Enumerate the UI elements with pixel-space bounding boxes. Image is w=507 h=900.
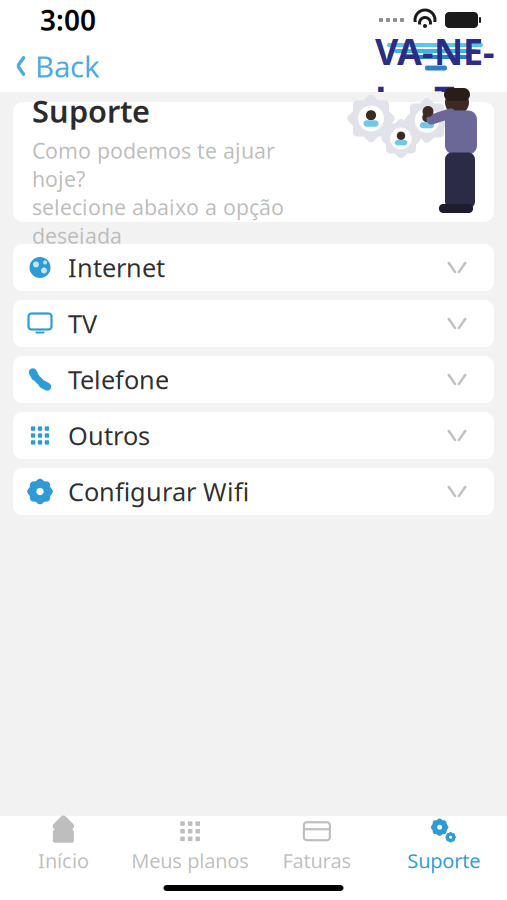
staticText: Suporte (407, 847, 480, 874)
staticText: Meus planos (131, 847, 249, 874)
staticText: 3:00 (40, 1, 96, 39)
button[interactable]: Telefone (13, 356, 494, 403)
button[interactable]: Início (0, 810, 127, 878)
button[interactable]: Internet (13, 244, 494, 291)
staticText: Faturas (282, 847, 351, 874)
button[interactable]: Back (0, 40, 100, 91)
button[interactable]: TV (13, 300, 494, 347)
button[interactable]: Configurar Wifi (13, 468, 494, 515)
button[interactable]: Meus planos (127, 810, 254, 878)
staticText: Configurar Wifi (68, 475, 249, 508)
staticText: VAL (375, 27, 434, 123)
button[interactable]: Outros (13, 412, 494, 459)
button[interactable]: Faturas (253, 810, 380, 878)
staticText: Internet (68, 251, 165, 284)
staticText: Início (38, 847, 89, 874)
button[interactable]: Suporte (380, 810, 507, 878)
staticText: Telefone (68, 363, 169, 396)
staticText: Suporte (32, 90, 150, 131)
staticText: Como podemos te ajuar hoje? (32, 136, 275, 193)
staticText: TV (68, 307, 97, 340)
staticText: selecione abaixo a opção desejada (32, 193, 284, 250)
staticText: Outros (68, 419, 150, 452)
staticText: NET (434, 27, 495, 123)
staticText: Back (35, 46, 100, 85)
